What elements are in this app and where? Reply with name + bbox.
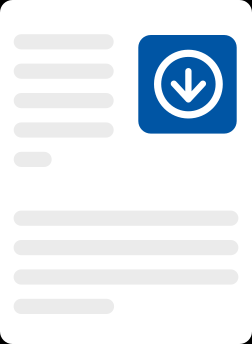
button[interactable]: Download (138, 35, 237, 134)
